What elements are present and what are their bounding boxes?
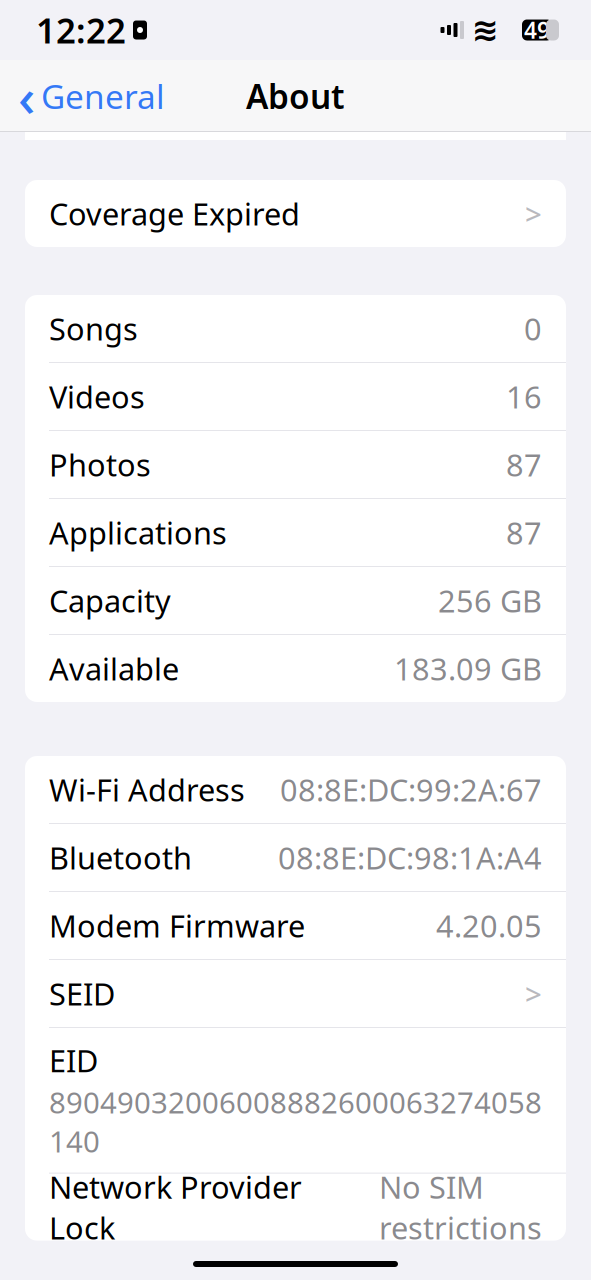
staticText: 87 [506,444,542,485]
staticText: Songs [49,308,138,349]
button[interactable]: Available [25,635,566,702]
staticText: 49 [524,15,550,45]
staticText: Capacity [49,580,171,621]
staticText: Available [49,648,179,689]
button[interactable]: Applications [25,499,566,566]
button[interactable]: ‹ [4,70,179,122]
staticText: Videos [49,376,145,417]
button[interactable]: Coverage Expired [25,180,566,247]
staticText: 4.20.05 [436,905,542,946]
staticText: 87 [506,512,542,553]
button[interactable]: SEID [25,960,566,1027]
staticText: About [246,74,345,118]
staticText: General [41,74,165,118]
staticText: ≋ [472,12,499,48]
button[interactable]: EID [25,1028,566,1173]
staticText: ‹ [18,61,35,131]
staticText: EID [49,1040,98,1081]
staticText: Network Provider Lock [49,1166,302,1248]
staticText: 0 [524,308,542,349]
staticText: 12:22 [36,7,126,53]
button[interactable]: Videos [25,363,566,430]
staticText: Coverage Expired [49,193,300,234]
button[interactable]: Songs [25,295,566,362]
button[interactable]: Photos [25,431,566,498]
staticText: No SIM restrictions [379,1166,542,1248]
staticText: Bluetooth [49,837,192,878]
staticText: 16 [506,376,542,417]
staticText: SEID [49,973,115,1014]
staticText: 08:8E:DC:98:1A:A4 [278,837,542,878]
button[interactable]: Wi-Fi Address [25,756,566,823]
staticText: 256 GB [438,580,542,621]
staticText: > [525,194,542,233]
button[interactable]: Network Provider Lock [25,1174,566,1241]
button[interactable]: Modem Firmware [25,892,566,959]
staticText: Wi-Fi Address [49,769,245,810]
staticText: Applications [49,512,227,553]
button[interactable]: Bluetooth [25,824,566,891]
staticText: 08:8E:DC:99:2A:67 [280,769,542,810]
staticText: > [525,974,542,1013]
staticText: 89049032006008882600063274058140 [49,1083,542,1161]
button[interactable]: Capacity [25,567,566,634]
staticText: 183.09 GB [394,648,542,689]
staticText: Modem Firmware [49,905,305,946]
staticText: Photos [49,444,151,485]
